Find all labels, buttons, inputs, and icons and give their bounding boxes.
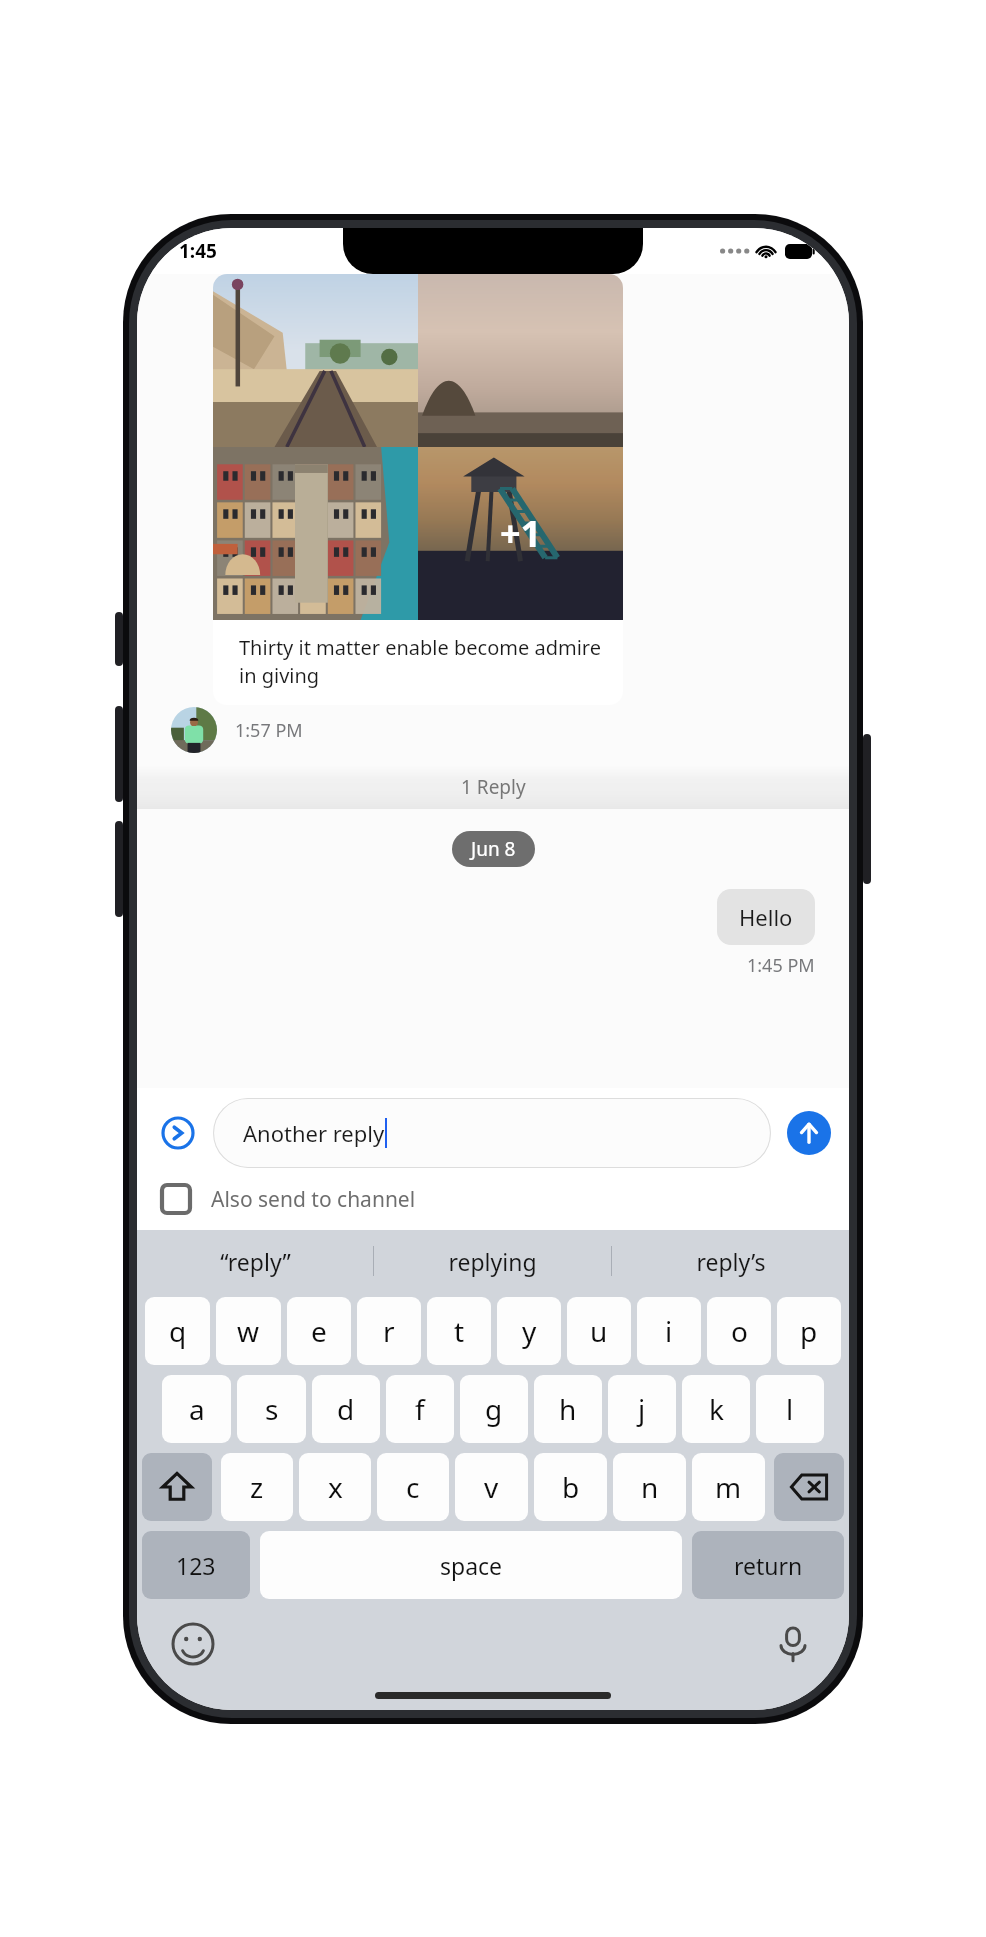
staticText: +1	[500, 509, 542, 558]
button[interactable]: Key	[774, 1453, 844, 1521]
staticText: d	[337, 1390, 355, 1428]
button[interactable]: Also send to channel	[159, 1182, 849, 1216]
button[interactable]: Emoji	[167, 1618, 219, 1670]
staticText: 1:45	[179, 238, 217, 264]
staticText: x	[328, 1468, 343, 1506]
button[interactable]: w	[216, 1297, 281, 1365]
button[interactable]: space	[260, 1531, 682, 1599]
button[interactable]: n	[613, 1453, 686, 1521]
button[interactable]: a	[162, 1375, 231, 1443]
staticText: Jun 8	[471, 836, 516, 862]
staticText: f	[415, 1390, 425, 1428]
button[interactable]: m	[692, 1453, 765, 1521]
staticText: 1:45 PM	[747, 953, 815, 978]
button[interactable]: u	[567, 1297, 631, 1365]
button[interactable]: k	[682, 1375, 750, 1443]
staticText: r	[383, 1312, 395, 1350]
staticText: s	[265, 1390, 279, 1428]
staticText: reply’s	[696, 1246, 766, 1277]
staticText: i	[665, 1312, 673, 1350]
button[interactable]: l	[756, 1375, 824, 1443]
button[interactable]: +1	[213, 274, 623, 705]
button[interactable]: Send	[787, 1111, 831, 1155]
button[interactable]: z	[221, 1453, 293, 1521]
button[interactable]: v	[455, 1453, 528, 1521]
staticText: v	[484, 1468, 499, 1506]
button[interactable]: i	[637, 1297, 701, 1365]
button[interactable]: h	[534, 1375, 602, 1443]
staticText: p	[800, 1312, 818, 1350]
staticText: e	[311, 1312, 327, 1350]
button[interactable]: c	[377, 1453, 449, 1521]
staticText: z	[250, 1468, 264, 1506]
staticText: k	[709, 1390, 724, 1428]
staticText: 1 Reply	[461, 774, 526, 800]
button[interactable]: y	[497, 1297, 561, 1365]
staticText: Thirty it matter enable become admire in…	[239, 634, 603, 689]
staticText: w	[237, 1312, 260, 1350]
staticText: replying	[448, 1246, 537, 1277]
staticText: y	[522, 1312, 537, 1350]
staticText: return	[734, 1550, 803, 1581]
button[interactable]: j	[608, 1375, 676, 1443]
staticText: Also send to channel	[211, 1185, 416, 1214]
staticText: u	[590, 1312, 608, 1350]
staticText: o	[731, 1312, 748, 1350]
button[interactable]: 123	[142, 1531, 250, 1599]
button[interactable]: q	[145, 1297, 210, 1365]
button[interactable]: g	[460, 1375, 528, 1443]
button[interactable]: r	[357, 1297, 421, 1365]
staticText: n	[641, 1468, 659, 1506]
staticText: c	[406, 1468, 420, 1506]
button[interactable]: return	[692, 1531, 844, 1599]
button[interactable]: e	[287, 1297, 351, 1365]
staticText: g	[485, 1390, 503, 1428]
staticText: l	[786, 1390, 794, 1428]
button[interactable]: 1 Reply	[137, 765, 849, 809]
button[interactable]: reply’s	[612, 1230, 849, 1292]
staticText: “reply”	[220, 1246, 291, 1277]
button[interactable]: o	[707, 1297, 771, 1365]
button[interactable]: f	[386, 1375, 454, 1443]
button[interactable]: p	[777, 1297, 841, 1365]
staticText: q	[169, 1312, 187, 1350]
button[interactable]: “reply”	[137, 1230, 373, 1292]
staticText: h	[559, 1390, 577, 1428]
staticText: t	[454, 1312, 465, 1350]
staticText: j	[638, 1390, 646, 1428]
staticText: Hello	[739, 902, 793, 932]
staticText: space	[440, 1550, 503, 1581]
button[interactable]: t	[427, 1297, 491, 1365]
button[interactable]: Attach	[155, 1110, 201, 1156]
button[interactable]: Another reply	[213, 1098, 771, 1168]
staticText: Another reply	[243, 1118, 385, 1148]
button[interactable]: replying	[374, 1230, 611, 1292]
button[interactable]: Voice input	[767, 1618, 819, 1670]
button[interactable]: s	[237, 1375, 306, 1443]
staticText: 123	[176, 1550, 216, 1581]
button[interactable]: b	[534, 1453, 607, 1521]
staticText: m	[715, 1468, 742, 1506]
button[interactable]: Hello	[717, 889, 815, 945]
button[interactable]: Key	[142, 1453, 212, 1521]
staticText: a	[189, 1390, 205, 1428]
button[interactable]: d	[312, 1375, 380, 1443]
button[interactable]: x	[299, 1453, 371, 1521]
staticText: 1:57 PM	[235, 718, 303, 743]
staticText: b	[562, 1468, 580, 1506]
